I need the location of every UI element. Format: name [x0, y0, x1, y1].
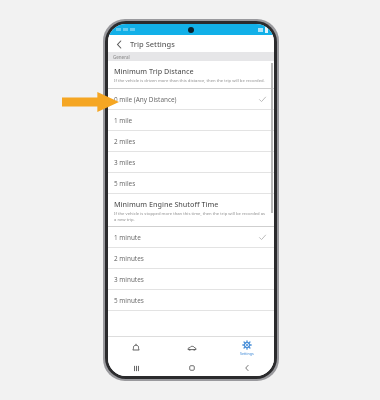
staticText: Trip Settings — [130, 39, 175, 49]
button[interactable]: Recents — [108, 360, 164, 376]
staticText: If the vehicle is stopped more than this… — [114, 211, 266, 222]
button[interactable]: Settings — [219, 336, 274, 360]
staticText: Minimum Engine Shutoff Time — [114, 199, 219, 209]
staticText: 5 miles — [114, 179, 136, 188]
staticText: 5 minutes — [114, 296, 144, 305]
staticText: Minimum Trip Distance — [114, 66, 194, 76]
staticText: 1 mile — [114, 116, 133, 125]
button[interactable]: 3 miles — [108, 152, 274, 172]
button[interactable]: 3 minutes — [108, 269, 274, 289]
staticText: 2 minutes — [114, 254, 144, 263]
staticText: If the vehicle is driven more than this … — [114, 78, 265, 84]
staticText: 2 miles — [114, 137, 136, 146]
button[interactable]: 5 minutes — [108, 290, 274, 310]
button[interactable]: Home — [164, 360, 219, 376]
staticText: 1 minute — [114, 233, 141, 242]
button[interactable]: Back — [219, 360, 274, 376]
button[interactable]: 0 mile (Any Distance) — [108, 89, 274, 109]
button[interactable]: 5 miles — [108, 173, 274, 193]
button[interactable]: Vehicles — [164, 336, 219, 360]
button[interactable]: Alerts — [108, 336, 164, 360]
staticText: Settings — [240, 351, 254, 356]
button[interactable]: 1 mile — [108, 110, 274, 130]
staticText: General — [113, 54, 130, 60]
button[interactable]: Back — [112, 37, 126, 51]
button[interactable]: 1 minute — [108, 227, 274, 247]
button[interactable]: 2 minutes — [108, 248, 274, 268]
staticText: 3 minutes — [114, 275, 144, 284]
staticText: 3 miles — [114, 158, 136, 167]
staticText: 0 mile (Any Distance) — [114, 95, 177, 104]
button[interactable]: 2 miles — [108, 131, 274, 151]
